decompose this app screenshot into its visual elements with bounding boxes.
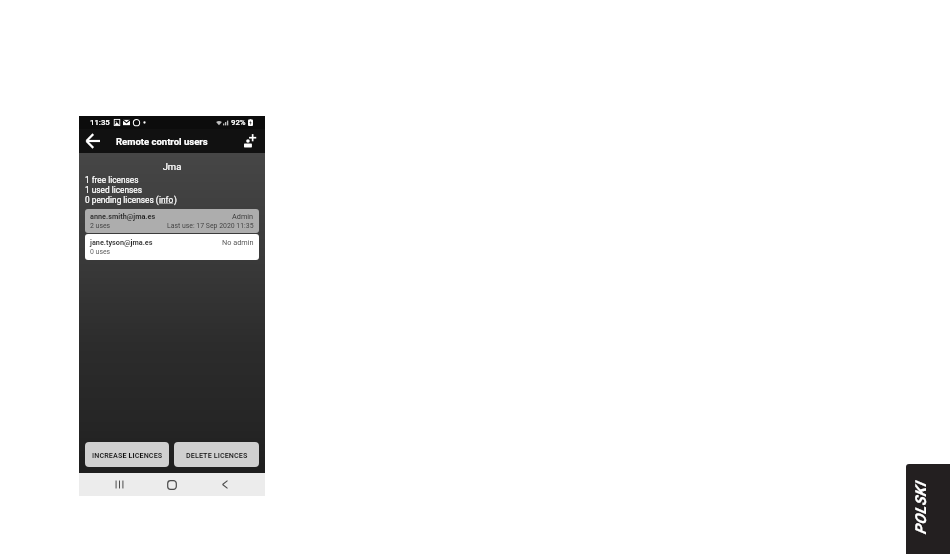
button[interactable]: anne.smith@jma.es bbox=[85, 209, 259, 233]
staticText: POLSKI bbox=[911, 481, 929, 534]
button[interactable]: Back bbox=[85, 133, 101, 149]
button[interactable]: DELETE LICENCES bbox=[174, 442, 259, 467]
staticText: Last use: 17 Sep 2020 11:35 bbox=[167, 222, 254, 230]
staticText: 11:35 bbox=[90, 118, 110, 127]
staticText: DELETE LICENCES bbox=[186, 451, 248, 459]
button[interactable]: jane.tyson@jma.es bbox=[85, 234, 259, 260]
staticText: 0 uses bbox=[90, 248, 111, 256]
staticText: anne.smith@jma.es bbox=[90, 212, 156, 221]
staticText: ) bbox=[174, 195, 177, 205]
button[interactable]: info bbox=[159, 195, 174, 205]
button[interactable]: Add user bbox=[242, 133, 258, 149]
button[interactable]: Back bbox=[198, 473, 251, 496]
staticText: 2 uses bbox=[90, 222, 111, 230]
staticText: jane.tyson@jma.es bbox=[90, 238, 153, 247]
button[interactable]: Home bbox=[145, 473, 198, 496]
staticText: 1 used licenses bbox=[85, 185, 143, 195]
staticText: 1 free licenses bbox=[85, 175, 139, 185]
staticText: Jma bbox=[79, 161, 265, 172]
staticText: INCREASE LICENCES bbox=[92, 451, 163, 459]
button[interactable]: POLSKI bbox=[906, 464, 950, 554]
staticText: Remote control users bbox=[116, 136, 208, 147]
staticText: No admin bbox=[222, 238, 254, 247]
staticText: Admin bbox=[232, 212, 254, 221]
staticText: 0 pending licenses ( bbox=[85, 195, 159, 205]
staticText: 92% bbox=[231, 118, 246, 127]
button[interactable]: INCREASE LICENCES bbox=[85, 442, 169, 467]
button[interactable]: Recents bbox=[93, 473, 145, 496]
